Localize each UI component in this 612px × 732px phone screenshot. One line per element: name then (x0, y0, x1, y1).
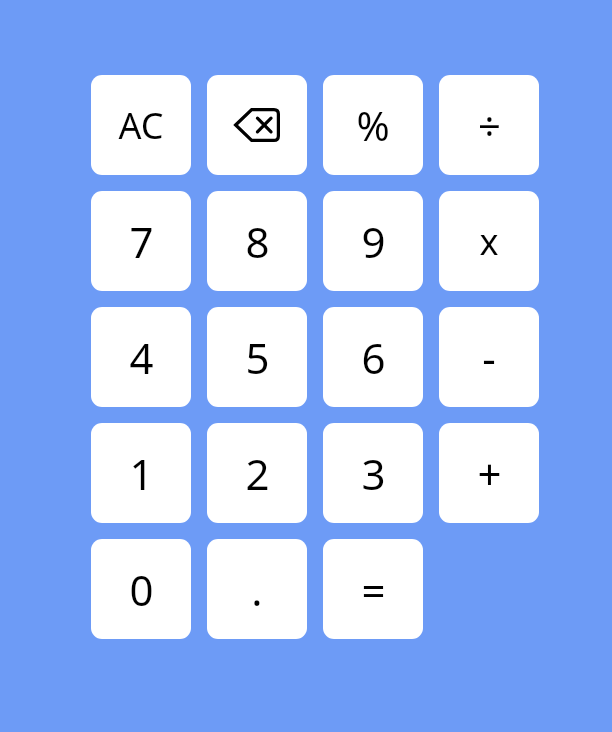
staticText: 0 (129, 561, 154, 618)
button[interactable]: - (439, 307, 539, 407)
button[interactable]: 5 (207, 307, 307, 407)
staticText: 6 (361, 329, 386, 386)
button[interactable]: 1 (91, 423, 191, 523)
button[interactable]: Backspace (207, 75, 307, 175)
button[interactable]: 8 (207, 191, 307, 291)
button[interactable]: 0 (91, 539, 191, 639)
button[interactable]: 4 (91, 307, 191, 407)
staticText: 2 (245, 445, 270, 502)
button[interactable]: 6 (323, 307, 423, 407)
staticText: x (479, 217, 499, 266)
staticText: 8 (245, 213, 270, 270)
staticText: 5 (245, 329, 270, 386)
staticText: % (356, 98, 390, 152)
button[interactable]: 2 (207, 423, 307, 523)
staticText: + (477, 445, 502, 502)
staticText: ÷ (478, 98, 501, 152)
button[interactable]: = (323, 539, 423, 639)
staticText: AC (118, 101, 164, 150)
button[interactable]: 7 (91, 191, 191, 291)
staticText: 4 (129, 329, 154, 386)
button[interactable]: ÷ (439, 75, 539, 175)
button[interactable]: . (207, 539, 307, 639)
button[interactable]: x (439, 191, 539, 291)
button[interactable]: + (439, 423, 539, 523)
staticText: 9 (361, 213, 386, 270)
staticText: 1 (129, 445, 154, 502)
button[interactable]: 3 (323, 423, 423, 523)
button[interactable]: % (323, 75, 423, 175)
staticText: . (251, 561, 263, 618)
button[interactable]: AC (91, 75, 191, 175)
staticText: = (361, 561, 386, 618)
button[interactable]: 9 (323, 191, 423, 291)
staticText: - (482, 329, 496, 386)
staticText: 7 (129, 213, 154, 270)
staticText: 3 (361, 445, 386, 502)
